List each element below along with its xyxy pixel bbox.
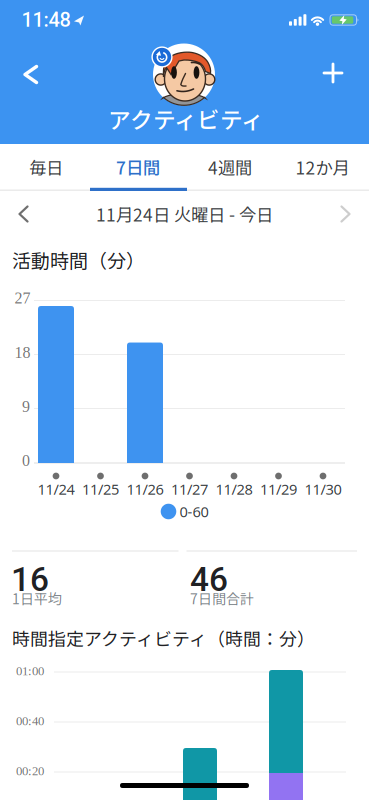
staticText: 11月24日 火曜日 - 今日	[96, 201, 273, 227]
staticText: 11/26	[126, 479, 163, 499]
staticText: 11/24	[37, 479, 74, 499]
staticText: 11/29	[260, 479, 297, 499]
staticText: 01:00	[16, 664, 44, 678]
staticText: 46	[190, 560, 228, 599]
staticText: 時間指定アクティビティ（時間：分）	[12, 625, 315, 651]
button[interactable]: Previous period	[3, 194, 43, 234]
staticText: 16	[11, 560, 49, 599]
staticText: 4週間	[208, 154, 252, 180]
staticText: 11:48	[21, 8, 70, 32]
staticText: 0-60	[179, 502, 208, 521]
button[interactable]: 7日間	[92, 144, 184, 190]
staticText: 9	[22, 398, 30, 415]
staticText: 11/27	[171, 479, 208, 499]
staticText: 1日平均	[12, 588, 62, 608]
staticText: 毎日	[29, 154, 63, 180]
button[interactable]: 毎日	[0, 144, 92, 190]
button[interactable]: 12か月	[276, 144, 369, 190]
staticText: 11/30	[304, 479, 341, 499]
button[interactable]: 4週間	[184, 144, 276, 190]
staticText: 18	[14, 344, 30, 361]
button[interactable]: Back	[3, 52, 47, 96]
staticText: 0	[22, 452, 30, 469]
staticText: 00:20	[16, 764, 44, 778]
staticText: 活動時間（分）	[12, 246, 145, 273]
staticText: アクティビティ	[108, 102, 264, 135]
button[interactable]: Next period	[326, 194, 366, 234]
staticText: 11/28	[215, 479, 252, 499]
button[interactable]: Add	[311, 51, 355, 95]
button[interactable]: Profile	[151, 41, 217, 107]
staticText: 12か月	[295, 154, 349, 180]
staticText: 00:40	[16, 714, 44, 728]
staticText: 7日間	[116, 154, 160, 180]
staticText: 27	[14, 289, 30, 307]
staticText: 11/25	[82, 479, 119, 499]
staticText: 7日間合計	[190, 588, 254, 608]
